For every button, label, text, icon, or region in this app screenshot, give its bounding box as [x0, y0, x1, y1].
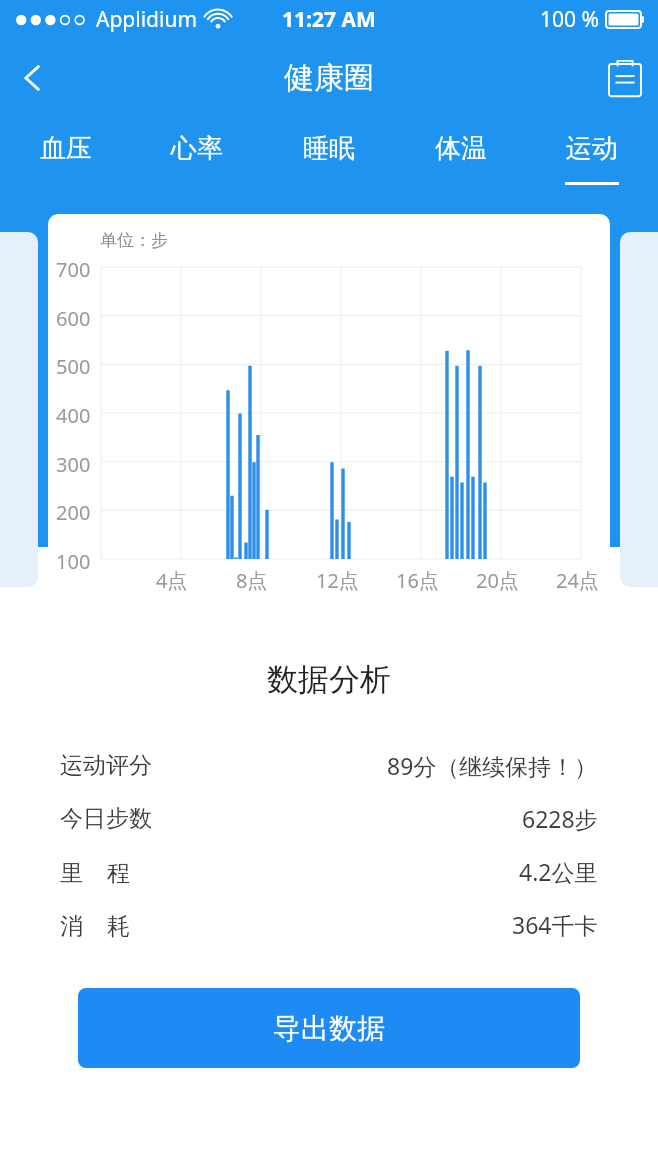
staticText: 600: [56, 305, 91, 332]
staticText: 300: [56, 451, 91, 478]
staticText: 健康圈: [284, 59, 374, 97]
staticText: 里 程: [60, 856, 130, 887]
staticText: 单位：步: [100, 230, 168, 251]
staticText: 11:27 AM: [282, 5, 376, 34]
button[interactable]: 睡眠: [270, 118, 388, 196]
staticText: 运动评分: [60, 751, 152, 780]
staticText: 睡眠: [303, 132, 355, 165]
staticText: 100: [56, 548, 91, 575]
staticText: 24点: [556, 567, 599, 594]
staticText: 12点: [316, 567, 359, 594]
staticText: 89分（继续保持！）: [387, 750, 598, 781]
staticText: 运动: [566, 132, 618, 165]
button[interactable]: Back: [0, 45, 66, 111]
staticText: 心率: [171, 132, 223, 165]
staticText: 4.2公里: [519, 856, 598, 887]
staticText: 500: [56, 353, 91, 380]
staticText: 100 %: [540, 5, 599, 34]
staticText: 消 耗: [60, 909, 130, 940]
staticText: 6228步: [522, 803, 598, 834]
staticText: 200: [56, 499, 91, 526]
button[interactable]: 体温: [402, 118, 520, 196]
staticText: 今日步数: [60, 804, 152, 833]
staticText: 400: [56, 402, 91, 429]
staticText: 数据分析: [0, 660, 658, 699]
staticText: 700: [56, 256, 91, 283]
staticText: 血压: [40, 132, 92, 165]
staticText: 20点: [476, 567, 519, 594]
staticText: Applidium: [96, 5, 198, 34]
button[interactable]: Records: [592, 45, 658, 111]
staticText: 导出数据: [273, 1011, 385, 1046]
staticText: 364千卡: [512, 909, 598, 940]
button[interactable]: 心率: [138, 118, 256, 196]
staticText: 4点: [156, 567, 188, 594]
button[interactable]: 血压: [7, 118, 125, 196]
staticText: 8点: [236, 567, 268, 594]
staticText: 体温: [435, 132, 487, 165]
button[interactable]: 运动: [533, 118, 651, 196]
staticText: 16点: [396, 567, 439, 594]
button[interactable]: 单位：步: [48, 214, 610, 622]
button[interactable]: 导出数据: [78, 988, 580, 1068]
